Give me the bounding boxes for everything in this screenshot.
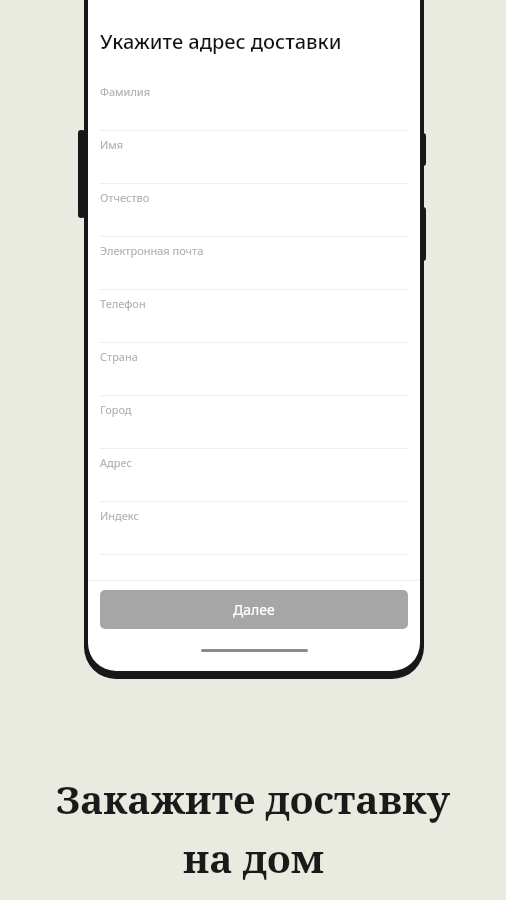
staticText: Электронная почта xyxy=(100,243,204,258)
staticText: Имя xyxy=(100,137,124,152)
button[interactable]: Телефон xyxy=(100,290,408,343)
staticText: Страна xyxy=(100,349,138,364)
button[interactable]: Имя xyxy=(100,131,408,184)
staticText: Закажите доставку xyxy=(56,772,450,825)
staticText: Телефон xyxy=(100,296,146,311)
staticText: Индекс xyxy=(100,508,139,523)
button[interactable]: Далее xyxy=(100,590,408,629)
button[interactable]: Страна xyxy=(100,343,408,396)
button[interactable]: Электронная почта xyxy=(100,237,408,290)
button[interactable]: Отчество xyxy=(100,184,408,237)
button[interactable]: Город xyxy=(100,396,408,449)
staticText: Отчество xyxy=(100,190,150,205)
staticText: Адрес xyxy=(100,455,132,470)
staticText: Далее xyxy=(233,600,275,619)
staticText: Укажите адрес доставки xyxy=(100,28,342,55)
button[interactable]: Адрес xyxy=(100,449,408,502)
staticText: Фамилия xyxy=(100,84,151,99)
button[interactable]: Фамилия xyxy=(100,78,408,131)
staticText: Город xyxy=(100,402,132,417)
button[interactable]: Индекс xyxy=(100,502,408,555)
staticText: на дом xyxy=(183,831,324,884)
